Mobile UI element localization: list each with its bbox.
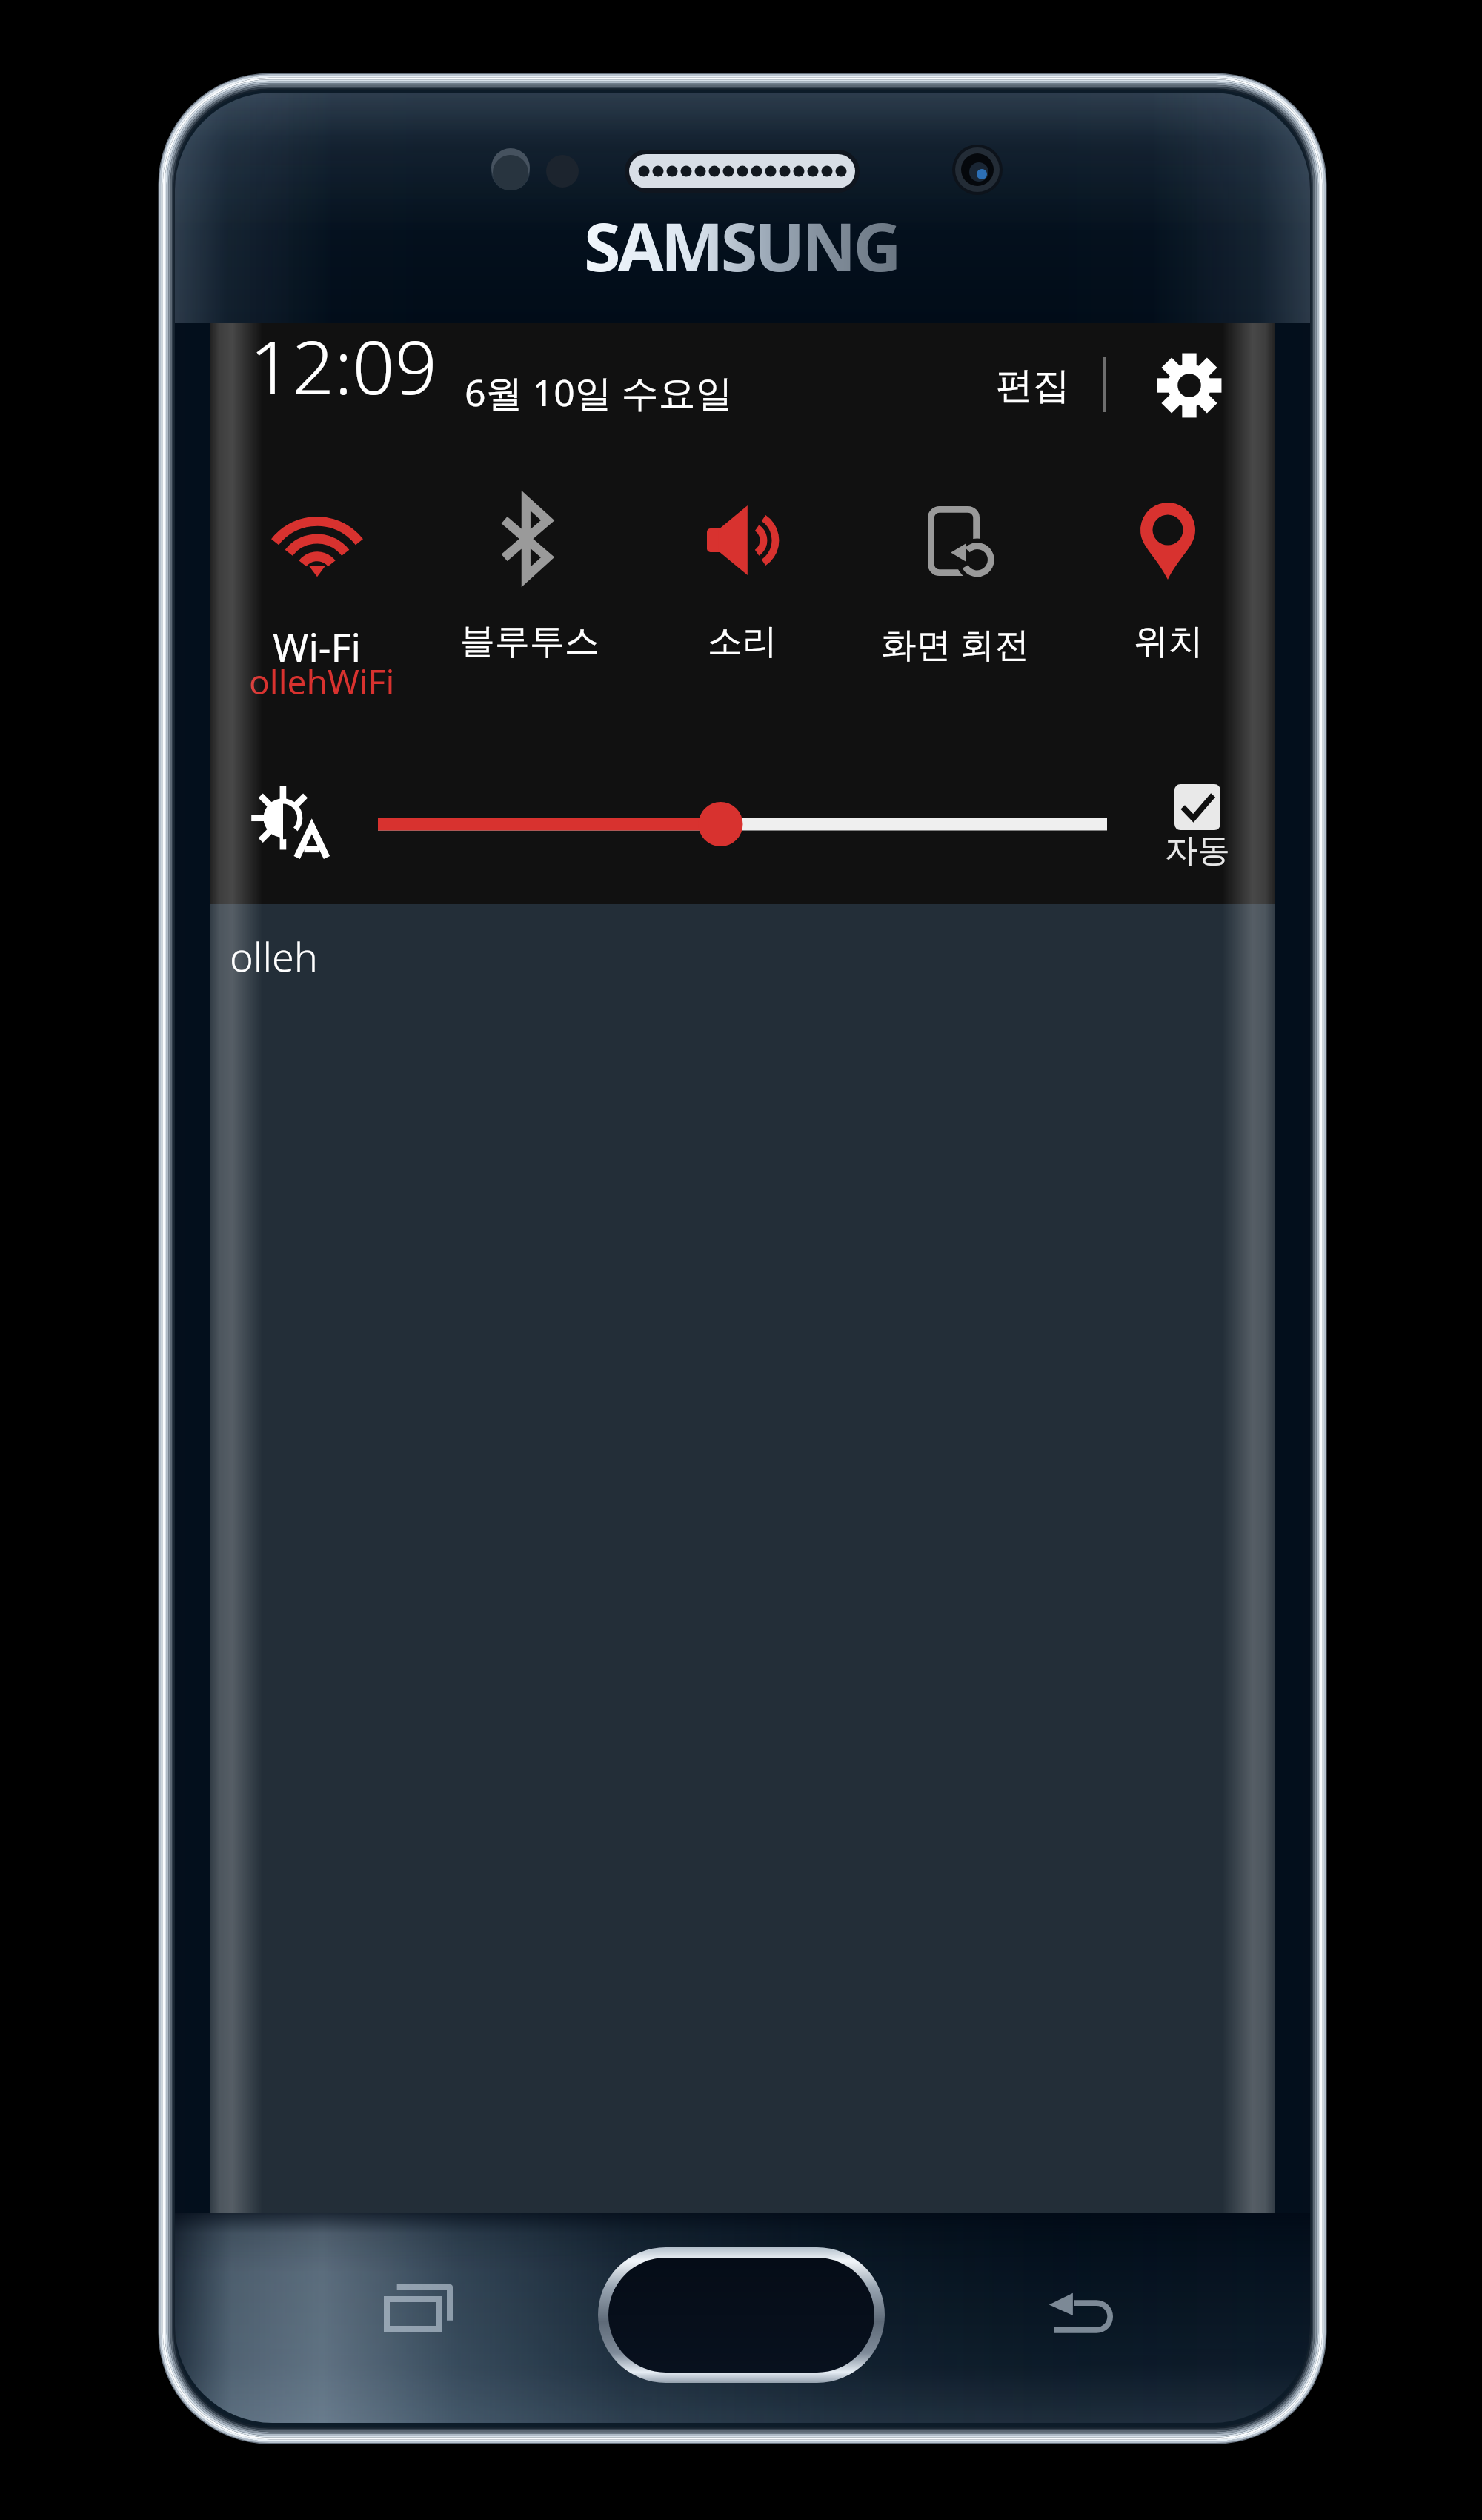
staticText: ollehWiFi xyxy=(249,658,395,705)
button[interactable]: Recent apps xyxy=(341,2253,496,2364)
staticText: olleh xyxy=(230,929,318,984)
button[interactable]: Home xyxy=(598,2247,885,2383)
staticText: 소리 xyxy=(708,620,777,663)
staticText: 화면 회전 xyxy=(881,620,1030,667)
button[interactable]: Brightness xyxy=(378,787,1107,861)
staticText: SAMSUNG xyxy=(584,200,899,291)
staticText: 6월 10일 수요일 xyxy=(465,367,733,417)
staticText: 12:09 xyxy=(250,315,437,416)
button[interactable]: Wi-Fi, on, ollehWiFi xyxy=(210,474,423,689)
staticText: 블루투스 xyxy=(460,620,599,663)
button[interactable]: 소리, on xyxy=(636,474,848,689)
button[interactable]: 화면 회전, off xyxy=(849,474,1062,689)
button[interactable]: 편집 xyxy=(986,342,1080,428)
button[interactable]: 위치, on xyxy=(1062,474,1275,689)
staticText: 위치 xyxy=(1134,620,1203,663)
staticText: 자동 xyxy=(1165,830,1230,871)
button[interactable]: Back xyxy=(1008,2253,1156,2364)
button[interactable]: 블루투스, off xyxy=(423,474,636,689)
staticText: 편집 xyxy=(996,362,1070,409)
staticText: Wi-Fi xyxy=(273,620,361,673)
button[interactable]: Settings xyxy=(1140,336,1239,435)
button[interactable]: 자동 xyxy=(1163,784,1232,873)
button[interactable]: olleh xyxy=(210,904,1275,2213)
button[interactable]: Auto brightness xyxy=(252,786,327,858)
